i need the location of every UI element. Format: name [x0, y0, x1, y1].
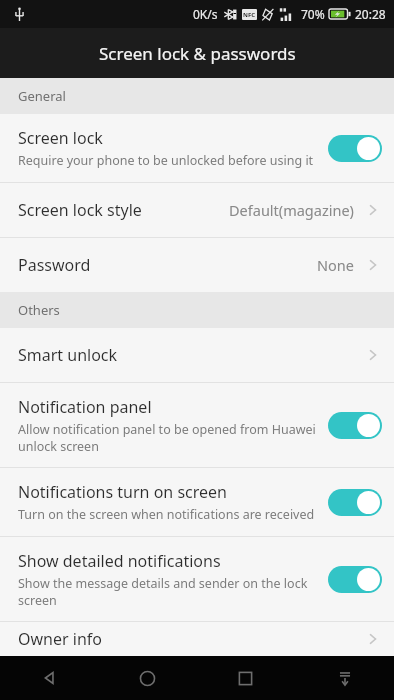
- staticText: Others: [18, 301, 60, 319]
- button[interactable]: Show detailed notifications: [0, 537, 394, 621]
- staticText: Notification panel: [18, 396, 152, 418]
- button[interactable]: Screen lock style: [0, 183, 394, 237]
- button[interactable]: Toggle: [328, 135, 382, 162]
- button[interactable]: Smart unlock: [0, 328, 394, 382]
- staticText: General: [18, 87, 66, 105]
- button[interactable]: Owner info: [0, 622, 394, 656]
- button[interactable]: Back: [0, 656, 98, 700]
- button[interactable]: Notification panel: [0, 383, 394, 467]
- button[interactable]: Password: [0, 238, 394, 292]
- staticText: Require your phone to be unlocked before…: [18, 152, 314, 169]
- button[interactable]: Toggle: [328, 489, 382, 516]
- staticText: Screen lock: [18, 127, 103, 149]
- staticText: Default(magazine): [229, 200, 354, 220]
- button[interactable]: Notifications turn on screen: [0, 468, 394, 536]
- other: Open: [364, 256, 382, 274]
- other: Open: [364, 346, 382, 364]
- button[interactable]: Screen lock: [0, 114, 394, 182]
- staticText: Show the message details and sender on t…: [18, 575, 320, 609]
- staticText: None: [317, 255, 354, 275]
- staticText: 20:28: [355, 6, 386, 22]
- staticText: Show detailed notifications: [18, 550, 221, 572]
- other: Open: [364, 201, 382, 219]
- button[interactable]: Recent apps: [196, 656, 295, 700]
- button[interactable]: Open notification panel: [295, 656, 394, 700]
- staticText: Allow notification panel to be opened fr…: [18, 421, 320, 455]
- other: Open: [364, 630, 382, 648]
- staticText: Password: [18, 254, 91, 276]
- button[interactable]: Home: [98, 656, 196, 700]
- staticText: 0K/s: [193, 6, 218, 22]
- staticText: Owner info: [18, 628, 102, 650]
- staticText: NFC: [243, 11, 256, 19]
- button[interactable]: Toggle: [328, 566, 382, 593]
- staticText: Smart unlock: [18, 344, 118, 366]
- staticText: Screen lock style: [18, 199, 142, 221]
- staticText: Screen lock & passwords: [99, 42, 296, 65]
- button[interactable]: Toggle: [328, 412, 382, 439]
- staticText: 70%: [301, 6, 325, 22]
- staticText: Turn on the screen when notifications ar…: [18, 506, 315, 523]
- staticText: Notifications turn on screen: [18, 481, 227, 503]
